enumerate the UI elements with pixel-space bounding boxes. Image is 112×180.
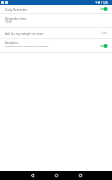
staticText: Ask for my weight on start [5, 32, 44, 36]
button[interactable]: Reminder time [0, 14, 112, 27]
button[interactable]: Daily Reminder [0, 5, 112, 14]
button[interactable]: Switch on [98, 42, 109, 50]
button[interactable]: Switch off [98, 29, 109, 37]
button[interactable]: Back [20, 171, 44, 180]
staticText: Reminder time [5, 17, 27, 21]
button[interactable]: Switch on [98, 5, 109, 13]
staticText: 11:05 [101, 1, 108, 5]
button[interactable]: Analytics [0, 39, 112, 53]
button[interactable]: Ask for my weight on start [0, 28, 112, 38]
staticText: Anonymous helps us making this app bette… [5, 45, 49, 48]
staticText: Daily Reminder [5, 8, 28, 12]
staticText: Analytics [5, 41, 19, 45]
button[interactable]: Home [44, 171, 68, 180]
button[interactable]: Recents [68, 171, 92, 180]
staticText: 10:00 [5, 20, 12, 24]
